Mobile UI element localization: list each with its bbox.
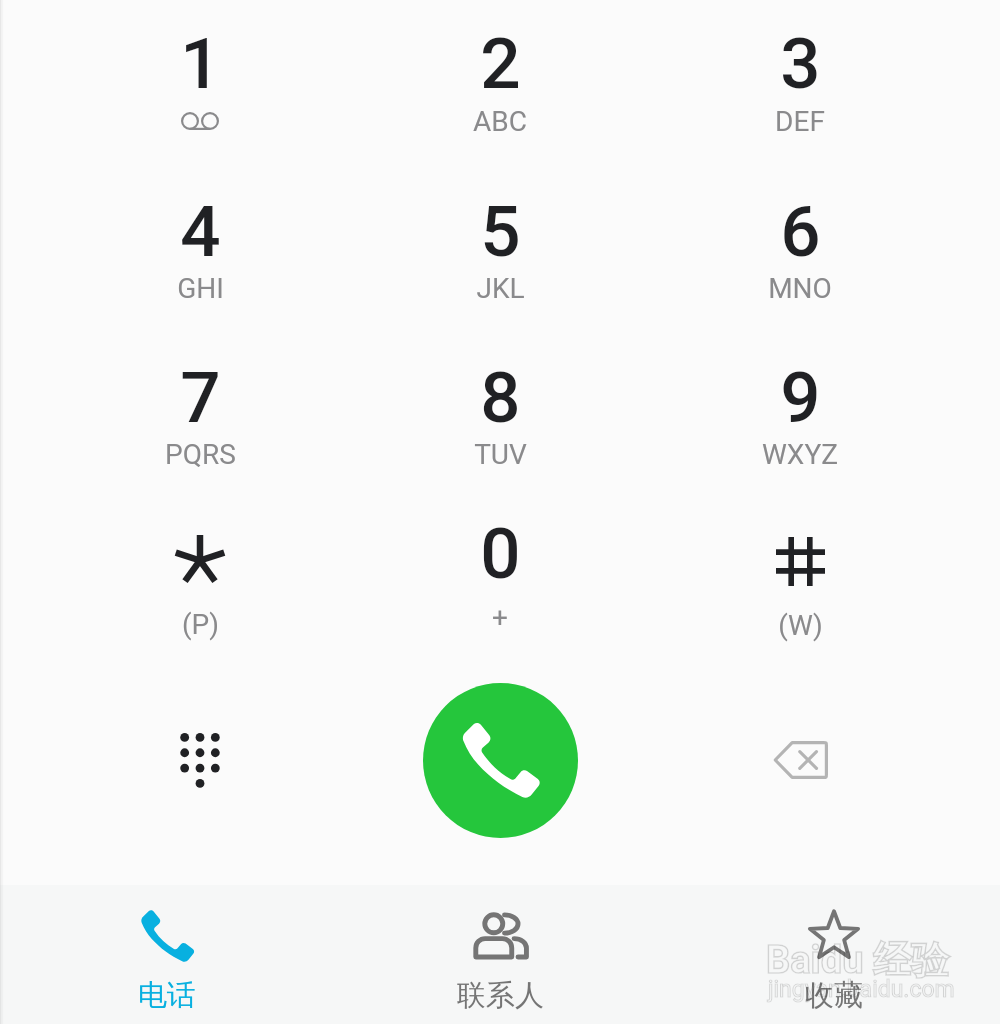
staticText: 0 xyxy=(480,512,521,595)
button[interactable]: 联系人 xyxy=(334,885,667,1024)
staticText: (P) xyxy=(182,608,219,641)
staticText: GHI xyxy=(177,272,224,305)
button[interactable]: 5 JKL xyxy=(390,163,610,328)
staticText: Baidu 经验 xyxy=(766,936,949,984)
staticText: 1 xyxy=(180,22,221,105)
staticText: JKL xyxy=(476,272,525,305)
button[interactable]: * (P) xyxy=(90,493,310,664)
button[interactable]: 7 PQRS xyxy=(90,329,310,494)
button[interactable]: 2 ABC xyxy=(390,0,610,161)
staticText: 5 xyxy=(480,190,521,273)
staticText: PQRS xyxy=(165,438,236,471)
staticText: 4 xyxy=(180,190,221,273)
button[interactable]: Backspace xyxy=(740,700,860,820)
staticText: DEF xyxy=(775,105,825,138)
staticText: ABC xyxy=(473,105,527,138)
staticText: 3 xyxy=(780,22,821,105)
button[interactable]: 6 MNO xyxy=(690,163,910,328)
button[interactable]: 0 + xyxy=(390,485,610,657)
staticText: MNO xyxy=(768,272,832,305)
staticText: 8 xyxy=(480,356,521,439)
staticText: 联系人 xyxy=(457,977,544,1014)
staticText: WXYZ xyxy=(762,438,838,471)
button[interactable]: 3 DEF xyxy=(690,0,910,161)
staticText: + xyxy=(492,601,508,634)
button[interactable]: 8 TUV xyxy=(390,329,610,494)
staticText: 9 xyxy=(780,356,821,439)
staticText: 7 xyxy=(180,356,221,439)
staticText: TUV xyxy=(474,438,527,471)
button[interactable]: Show keypad xyxy=(140,700,260,820)
button[interactable]: 4 GHI xyxy=(90,163,310,328)
button[interactable]: 1 voicemail xyxy=(90,0,310,161)
staticText: jingyan.baidu.com xyxy=(768,976,955,1003)
button[interactable]: 电话 xyxy=(0,885,334,1024)
button[interactable]: 9 WXYZ xyxy=(690,329,910,494)
staticText: 2 xyxy=(480,22,521,105)
staticText: 电话 xyxy=(138,977,196,1014)
button[interactable]: 收藏 xyxy=(667,885,1000,1024)
staticText: 6 xyxy=(780,190,821,273)
staticText: 收藏 xyxy=(805,977,863,1014)
button[interactable]: # (W) xyxy=(690,493,910,665)
button[interactable]: Call xyxy=(423,683,578,838)
staticText: (W) xyxy=(778,609,823,642)
